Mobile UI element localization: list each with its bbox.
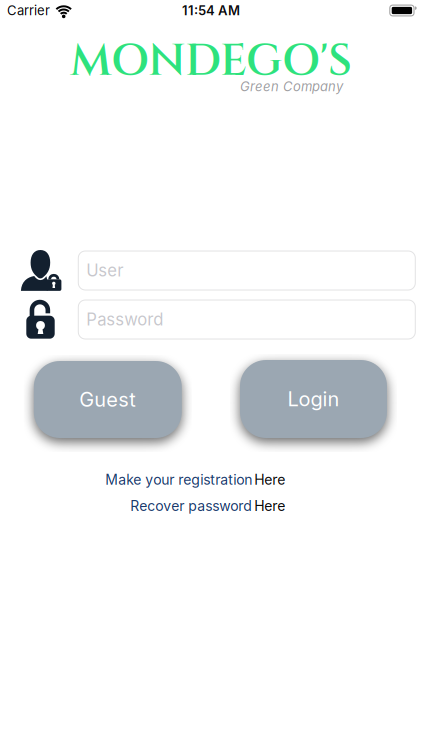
staticText: Here xyxy=(254,471,285,488)
button[interactable]: Login xyxy=(240,360,387,438)
staticText: Make your registration xyxy=(105,471,252,488)
staticText: Green Company xyxy=(240,79,343,94)
staticText: Password xyxy=(86,309,163,330)
staticText: Guest xyxy=(79,387,136,412)
staticText: Carrier xyxy=(7,3,50,18)
staticText: 11:54 AM xyxy=(182,3,240,18)
staticText: User xyxy=(86,260,123,281)
staticText: Recover password xyxy=(130,497,252,514)
staticText: Login xyxy=(287,387,339,411)
button[interactable]: Here xyxy=(254,497,285,514)
staticText: Here xyxy=(254,497,285,514)
staticText: MONDEGO'S xyxy=(70,32,352,91)
button[interactable]: Here xyxy=(254,471,285,488)
button[interactable]: Guest xyxy=(34,361,182,438)
